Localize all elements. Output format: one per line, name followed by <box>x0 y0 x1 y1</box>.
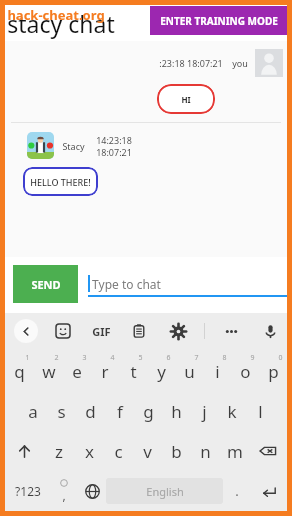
staticText: HI <box>181 94 191 105</box>
staticText: u <box>184 360 195 383</box>
staticText: d <box>85 400 96 423</box>
button[interactable]: q <box>5 351 34 391</box>
button[interactable]: Settings <box>165 318 191 344</box>
button[interactable]: x <box>74 431 104 471</box>
button[interactable]: y <box>147 351 175 391</box>
staticText: i <box>215 360 220 383</box>
button[interactable]: j <box>190 391 218 431</box>
staticText: Type to chat <box>92 276 161 292</box>
button[interactable]: n <box>191 431 220 471</box>
staticText: m <box>227 440 243 463</box>
staticText: , <box>62 487 66 503</box>
button[interactable]: Stacy avatar <box>27 132 54 159</box>
staticText: ?123 <box>15 483 41 499</box>
staticText: GIF <box>92 324 111 339</box>
button[interactable]: ?123 <box>5 471 50 511</box>
button[interactable]: Clipboard <box>126 318 152 344</box>
button[interactable]: HI <box>157 84 215 114</box>
button[interactable]: Backspace <box>249 431 287 471</box>
staticText: l <box>258 400 263 423</box>
button[interactable]: v <box>133 431 162 471</box>
staticText: 18:07:21 <box>96 146 132 158</box>
staticText: hack-cheat.org <box>7 6 105 24</box>
staticText: 1 <box>25 353 30 363</box>
staticText: HELLO THERE! <box>30 176 91 188</box>
staticText: 6 <box>166 353 171 363</box>
staticText: k <box>227 400 237 423</box>
staticText: s <box>57 400 66 423</box>
button[interactable]: Type to chat <box>88 264 287 303</box>
staticText: 3 <box>82 353 87 363</box>
staticText: t <box>130 360 137 383</box>
staticText: 0 <box>278 353 283 363</box>
button[interactable]: Enter <box>251 471 287 511</box>
staticText: 9 <box>250 353 255 363</box>
button[interactable]: f <box>105 391 134 431</box>
button[interactable]: b <box>162 431 191 471</box>
button[interactable]: p <box>259 351 287 391</box>
staticText: n <box>200 440 211 463</box>
staticText: r <box>101 360 109 383</box>
button[interactable]: English <box>106 478 223 504</box>
staticText: y <box>157 360 166 383</box>
staticText: 7 <box>194 353 199 363</box>
staticText: English <box>146 484 184 499</box>
button[interactable]: a <box>18 391 47 431</box>
button[interactable]: Voice input <box>257 318 283 344</box>
button[interactable]: s <box>47 391 76 431</box>
button[interactable]: h <box>162 391 190 431</box>
button[interactable]: Back <box>14 319 38 343</box>
button[interactable]: g <box>134 391 162 431</box>
button[interactable]: m <box>220 431 249 471</box>
staticText: j <box>202 400 207 423</box>
button[interactable]: e <box>63 351 91 391</box>
staticText: 5 <box>138 353 143 363</box>
staticText: g <box>143 400 154 423</box>
button[interactable]: Change language <box>78 471 106 511</box>
button[interactable]: GIF <box>88 318 114 344</box>
staticText: 4 <box>110 353 115 363</box>
staticText: z <box>55 440 63 463</box>
staticText: v <box>143 440 152 463</box>
staticText: 2 <box>54 353 59 363</box>
button[interactable]: r <box>91 351 119 391</box>
button[interactable]: Your avatar <box>255 49 283 77</box>
staticText: c <box>114 440 123 463</box>
button[interactable]: Emoji <box>50 318 76 344</box>
button[interactable]: i <box>203 351 231 391</box>
staticText: o <box>240 360 251 383</box>
button[interactable]: t <box>119 351 147 391</box>
staticText: . <box>235 482 239 500</box>
staticText: h <box>171 400 182 423</box>
staticText: a <box>28 400 38 423</box>
staticText: 14:23:18 <box>96 134 132 146</box>
button[interactable]: u <box>175 351 203 391</box>
staticText: x <box>85 440 94 463</box>
button[interactable]: , <box>50 471 78 511</box>
staticText: e <box>72 360 82 383</box>
button[interactable]: SEND <box>13 265 78 303</box>
button[interactable]: k <box>218 391 246 431</box>
button[interactable]: . <box>223 471 251 511</box>
button[interactable]: w <box>34 351 63 391</box>
staticText: SEND <box>31 277 61 292</box>
staticText: ENTER TRAINING MODE <box>160 14 278 28</box>
button[interactable]: o <box>231 351 259 391</box>
button[interactable]: z <box>44 431 74 471</box>
staticText: you <box>232 57 248 69</box>
staticText: :23:18 18:07:21 <box>159 57 223 69</box>
staticText: Stacy <box>62 140 85 152</box>
staticText: f <box>117 400 123 423</box>
button[interactable]: l <box>246 391 274 431</box>
staticText: stacy chat <box>7 8 115 39</box>
staticText: w <box>42 360 56 383</box>
button[interactable]: Shift <box>5 431 44 471</box>
button[interactable]: ENTER TRAINING MODE <box>150 6 287 35</box>
staticText: p <box>268 360 279 383</box>
staticText: 8 <box>222 353 227 363</box>
button[interactable]: d <box>76 391 105 431</box>
button[interactable]: c <box>104 431 133 471</box>
button[interactable]: More options <box>218 318 244 344</box>
staticText: b <box>171 440 182 463</box>
button[interactable]: HELLO THERE! <box>23 167 98 196</box>
